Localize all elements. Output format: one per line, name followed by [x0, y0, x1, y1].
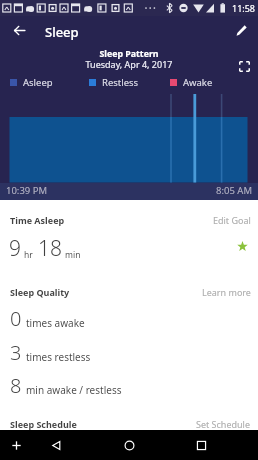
button[interactable]: 3 — [10, 339, 91, 366]
staticText: 18 — [38, 234, 62, 263]
button[interactable]: Full screen — [236, 58, 252, 74]
button[interactable]: 0 — [10, 305, 85, 332]
staticText: Tuesday, Apr 4, 2017 — [0, 58, 258, 70]
staticText: Time Asleep — [10, 214, 65, 226]
staticText: Asleep — [23, 76, 53, 88]
button[interactable]: Recent apps — [187, 430, 215, 460]
staticText: times awake — [26, 316, 85, 330]
staticText: times restless — [26, 350, 91, 364]
staticText: Learn more — [202, 286, 251, 298]
staticText: Awake — [183, 76, 213, 88]
staticText: Edit Goal — [213, 214, 251, 226]
staticText: Sleep — [45, 23, 79, 41]
button[interactable]: Edit — [230, 19, 252, 41]
staticText: Restless — [102, 76, 139, 88]
button[interactable]: 8 — [10, 372, 122, 399]
staticText: 3 — [10, 339, 22, 366]
staticText: Set Schedule — [196, 418, 251, 430]
staticText: min — [65, 249, 81, 261]
staticText: min awake / restless — [26, 383, 122, 397]
staticText: 11:58 — [232, 2, 256, 14]
button[interactable]: Edit Goal — [209, 214, 258, 226]
staticText: 9 — [9, 234, 21, 263]
button[interactable]: Time Asleep — [0, 214, 69, 226]
staticText: 8:05 AM — [216, 184, 253, 197]
button[interactable]: Back — [42, 430, 70, 460]
button[interactable]: Restless — [89, 76, 139, 88]
button[interactable]: Add — [2, 430, 30, 460]
staticText: hr — [24, 249, 33, 261]
button[interactable]: Sleep Schedule — [0, 418, 81, 430]
staticText: 10:39 PM — [6, 184, 48, 197]
button[interactable]: Back — [8, 19, 30, 41]
staticText: Sleep Pattern — [0, 48, 258, 60]
staticText: Sleep Quality — [10, 286, 70, 298]
button[interactable]: Sleep Quality — [0, 286, 74, 298]
staticText: 0 — [10, 305, 22, 332]
staticText: 8 — [10, 372, 22, 399]
button[interactable]: Home — [115, 430, 143, 460]
button[interactable]: Awake — [170, 76, 213, 88]
button[interactable]: Learn more — [198, 286, 258, 298]
button[interactable]: Set Schedule — [192, 418, 258, 430]
button[interactable]: Asleep — [10, 76, 53, 88]
staticText: Sleep Schedule — [10, 418, 77, 430]
